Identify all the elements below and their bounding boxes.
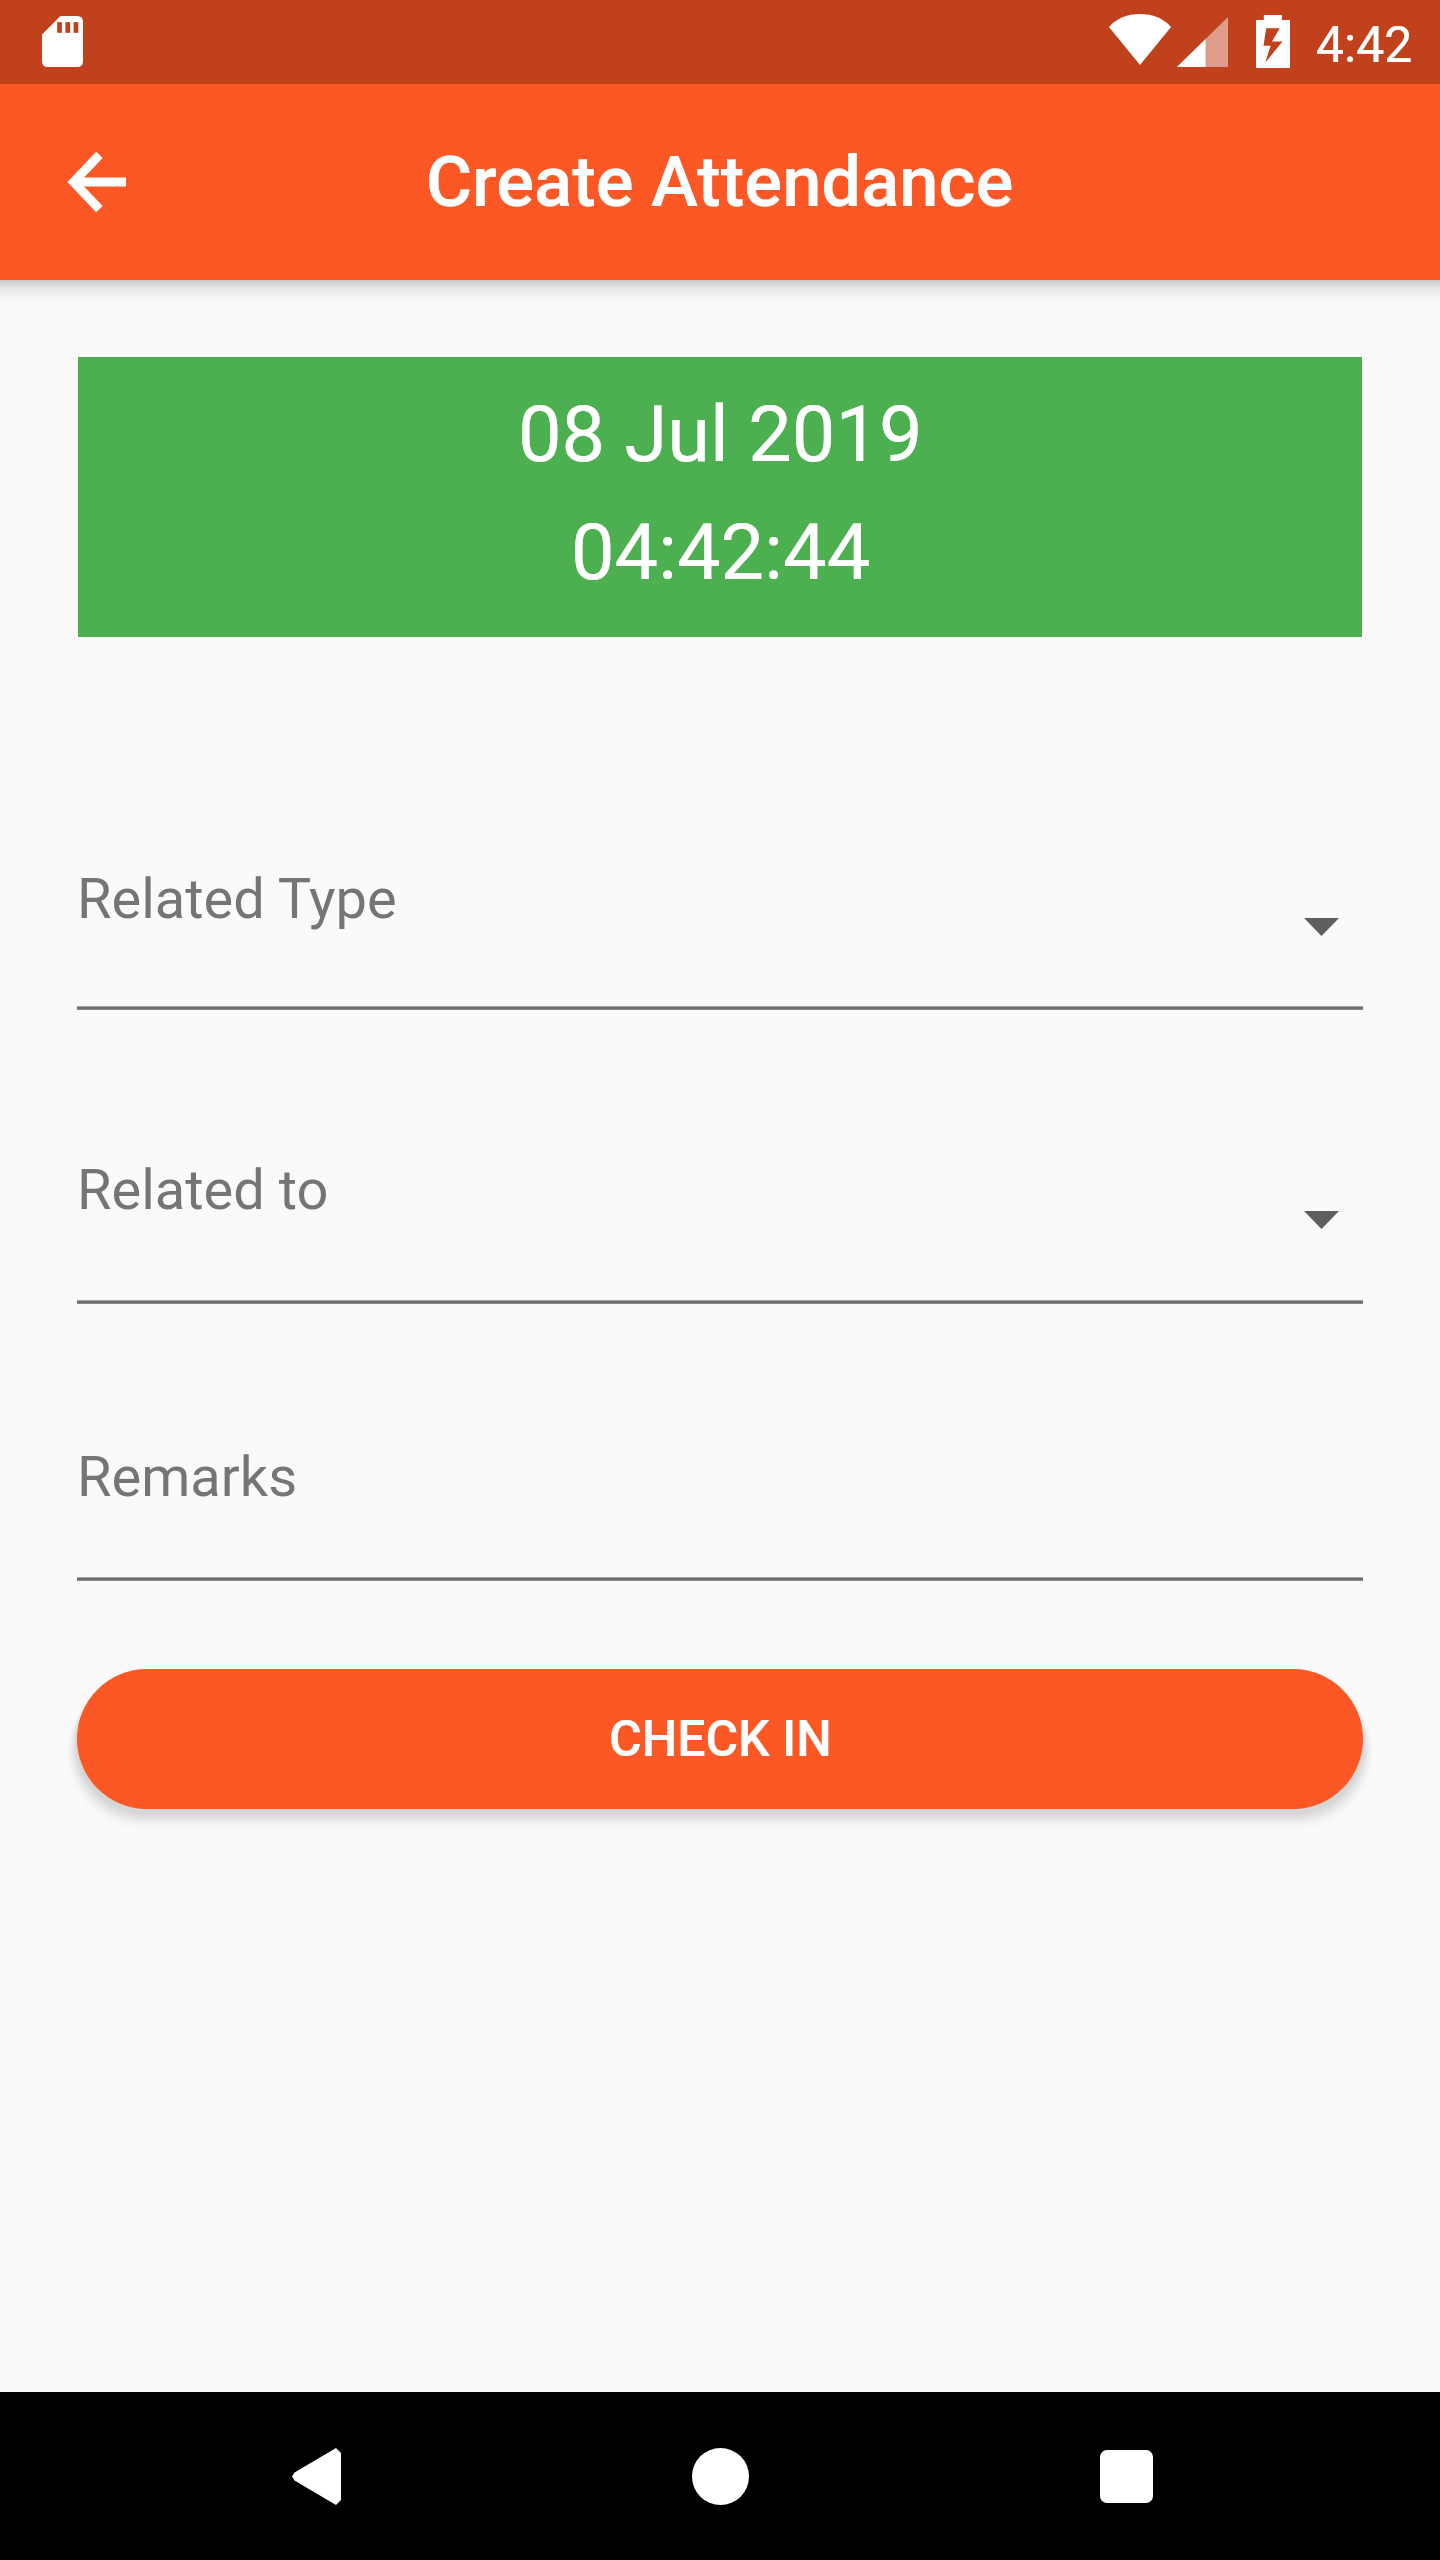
button[interactable]: Home bbox=[636, 2392, 804, 2560]
button[interactable]: Remarks bbox=[77, 1444, 1363, 1582]
staticText: Remarks bbox=[77, 1444, 298, 1510]
button[interactable]: CHECK IN bbox=[77, 1669, 1363, 1809]
staticText: Related to bbox=[77, 1157, 329, 1223]
staticText: 04:42:44 bbox=[571, 507, 871, 598]
staticText: 08 Jul 2019 bbox=[518, 389, 923, 480]
staticText: CHECK IN bbox=[609, 1710, 832, 1769]
staticText: Related Type bbox=[77, 866, 397, 932]
staticText: 4:42 bbox=[1316, 16, 1413, 75]
staticText: Create Attendance bbox=[426, 141, 1014, 224]
button[interactable]: Related Type bbox=[77, 866, 1363, 1011]
button[interactable]: Back bbox=[42, 126, 154, 238]
button[interactable]: Related to bbox=[77, 1157, 1363, 1305]
button[interactable]: Recent apps bbox=[1042, 2392, 1210, 2560]
button[interactable]: Navigate back bbox=[232, 2392, 400, 2560]
